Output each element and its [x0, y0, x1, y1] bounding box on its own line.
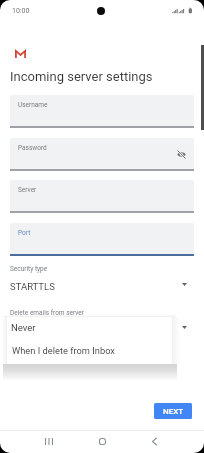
staticText: Delete emails from server	[10, 309, 84, 317]
button[interactable]: NEXT	[154, 403, 192, 419]
other: Show password	[177, 150, 186, 159]
staticText: Server	[18, 186, 37, 194]
button[interactable]: Server	[10, 180, 194, 213]
staticText: 10:00	[12, 7, 30, 15]
staticText: NEXT	[163, 407, 184, 416]
button[interactable]: Recent apps	[34, 430, 64, 453]
staticText: STARTTLS	[10, 281, 55, 292]
staticText: Never	[10, 324, 35, 335]
staticText: When I delete from Inbox	[12, 345, 115, 356]
button[interactable]: Never	[7, 317, 172, 341]
button[interactable]: Password	[10, 138, 194, 171]
button[interactable]: Port	[10, 223, 194, 256]
button[interactable]: Security type	[0, 264, 204, 294]
staticText: Incoming server settings	[10, 69, 153, 84]
staticText: Username	[18, 101, 48, 109]
button[interactable]: Home	[87, 430, 117, 453]
staticText: Password	[18, 144, 47, 152]
staticText: Never	[11, 322, 36, 333]
staticText: Port	[18, 229, 31, 237]
button[interactable]: When I delete from Inbox	[7, 341, 172, 364]
button[interactable]: Delete emails from server	[0, 308, 204, 338]
staticText: Security type	[10, 265, 48, 273]
button[interactable]: Username	[10, 95, 194, 128]
button[interactable]: Back	[139, 430, 169, 453]
